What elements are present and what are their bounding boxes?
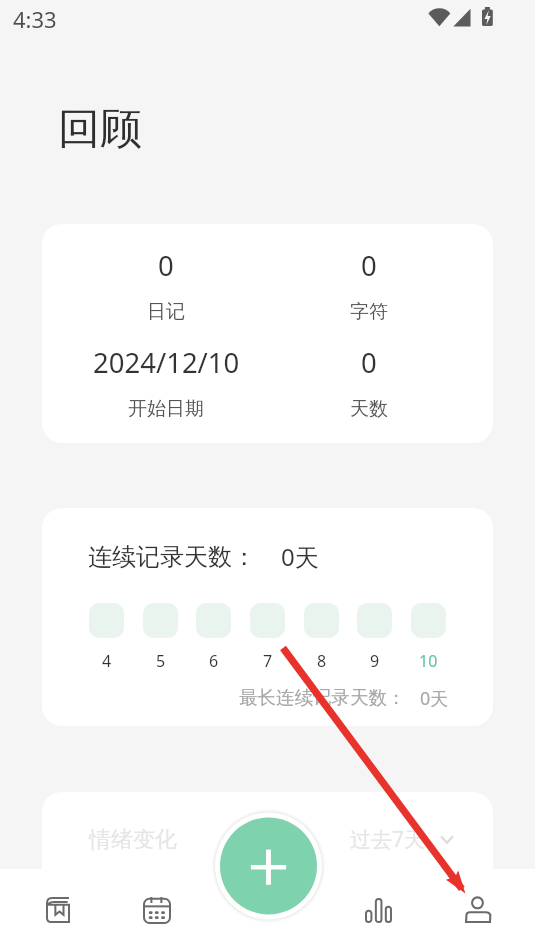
staticText: 回顾 [58,103,142,156]
staticText: 0天 [281,540,319,573]
staticText: 8 [317,650,327,672]
staticText: 连续记录天数： [88,542,256,572]
staticText: 4 [102,650,112,672]
staticText: 0 [361,344,377,381]
staticText: 过去7天 [350,825,426,854]
staticText: 开始日期 [128,397,204,421]
button[interactable]: 0 [42,224,493,443]
staticText: 日记 [147,300,185,324]
staticText: 4:33 [13,4,57,34]
staticText: 字符 [350,300,388,324]
staticText: 0 [158,247,174,284]
button[interactable]: Journal [8,869,107,951]
button[interactable]: Statistics [329,869,428,951]
staticText: 10 [419,650,438,672]
staticText: 最长连续记录天数： [239,686,406,709]
staticText: 天数 [350,397,388,421]
button[interactable]: 连续记录天数： [42,508,493,726]
staticText: 6 [209,650,219,672]
button[interactable]: Calendar [107,869,206,951]
staticText: 5 [156,650,166,672]
button[interactable]: Profile [428,869,527,951]
staticText: 0天 [420,686,449,711]
button[interactable]: Add entry [206,804,330,928]
staticText: 0 [361,247,377,284]
staticText: 7 [263,650,273,672]
staticText: 9 [370,650,380,672]
staticText: 情绪变化 [89,826,177,854]
staticText: 2024/12/10 [93,344,240,381]
button[interactable]: 情绪变化 [42,792,493,951]
